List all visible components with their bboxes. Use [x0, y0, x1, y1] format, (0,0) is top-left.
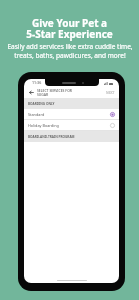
staticText: SELECT SERVICES FOR SUGAR: [37, 88, 106, 97]
staticText: BOARD-AND-TRAIN PROGRAM: [28, 135, 75, 139]
staticText: Holiday Boarding: [28, 123, 110, 128]
staticText: Easily add services like extra cuddle ti…: [7, 42, 133, 60]
staticText: BOARDING ONLY: [28, 102, 55, 106]
button[interactable]: Back: [27, 88, 36, 97]
staticText: Give Your Pet a 5-Star Experience: [26, 16, 113, 41]
staticText: 11:36: [32, 80, 42, 85]
button[interactable]: Holiday Boarding: [24, 120, 119, 130]
button[interactable]: NEXT: [106, 90, 115, 95]
staticText: Standard: [28, 112, 110, 117]
button[interactable]: Standard: [24, 109, 119, 119]
